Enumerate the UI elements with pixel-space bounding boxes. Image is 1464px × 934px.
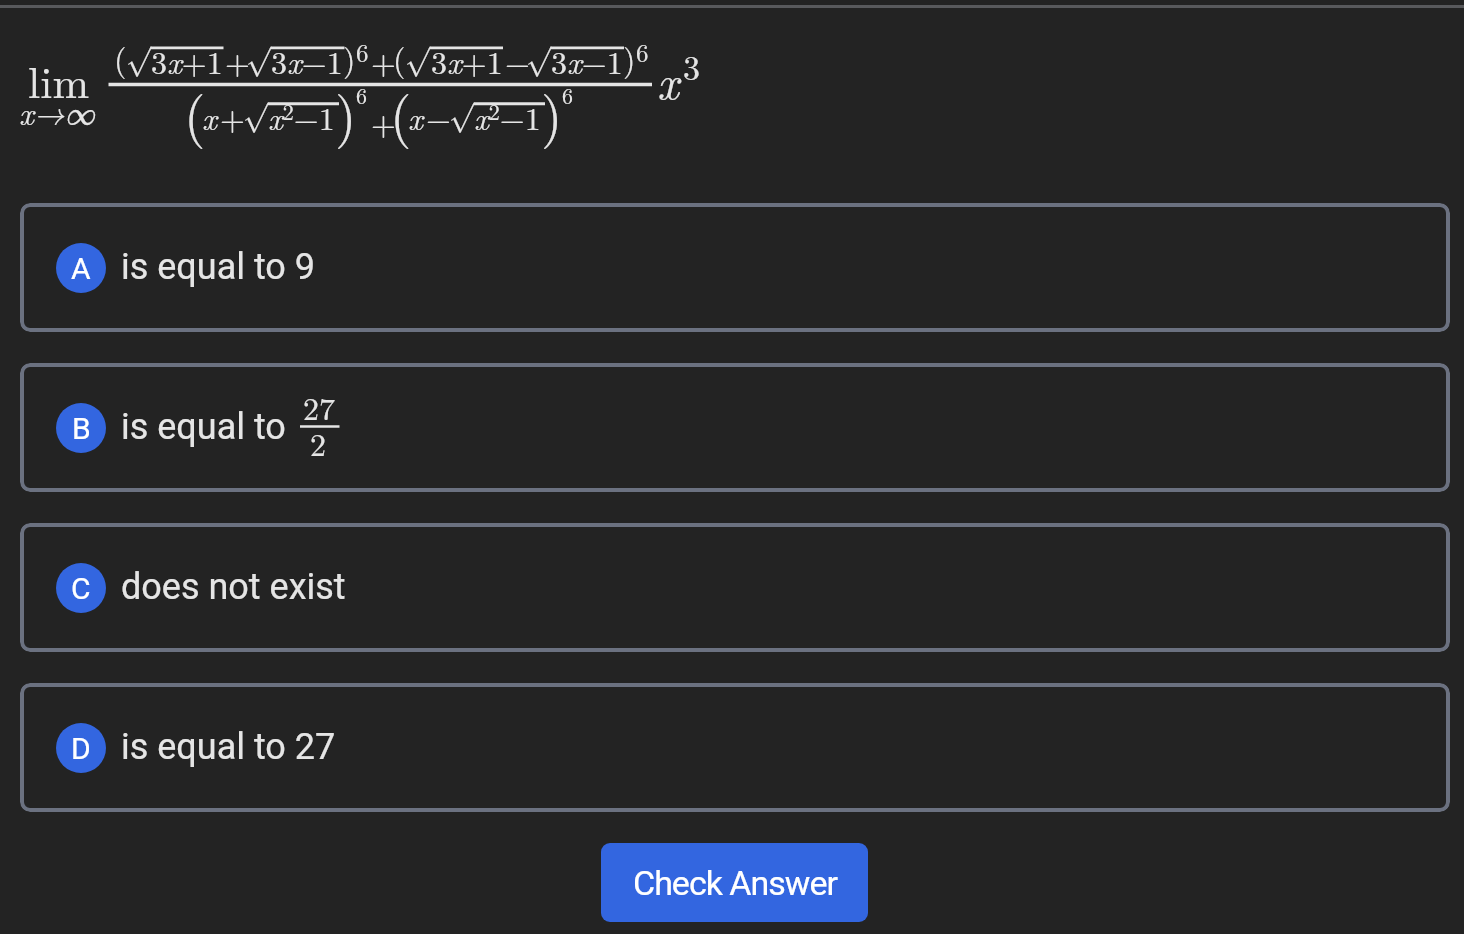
staticText: √ bbox=[243, 80, 268, 110]
staticText: ( bbox=[393, 35, 406, 80]
staticText: ) bbox=[343, 35, 356, 80]
staticText: B bbox=[72, 411, 91, 446]
staticText: D bbox=[71, 731, 91, 766]
staticText: √ bbox=[126, 24, 151, 54]
staticText: 2 bbox=[310, 420, 327, 465]
staticText: x2−1 bbox=[474, 94, 541, 139]
staticText: is equal to bbox=[121, 406, 286, 448]
button[interactable]: Check Answer bbox=[601, 843, 868, 922]
staticText: x bbox=[408, 94, 423, 139]
staticText: 27 bbox=[303, 384, 336, 429]
staticText: x→∞ bbox=[19, 89, 95, 134]
button[interactable]: Option B: is equal to 27 over 2 bbox=[20, 363, 1450, 492]
button[interactable]: Option A: is equal to 9 bbox=[20, 203, 1450, 332]
staticText: √ bbox=[449, 80, 474, 110]
staticText: 3x−1 bbox=[551, 38, 623, 83]
staticText: − bbox=[426, 94, 451, 139]
staticText: 6 bbox=[562, 79, 574, 110]
staticText: √ bbox=[405, 24, 430, 54]
staticText: ) bbox=[623, 35, 636, 80]
staticText: − bbox=[505, 38, 530, 83]
staticText: + bbox=[371, 99, 396, 144]
staticText: √ bbox=[526, 24, 551, 54]
staticText: ) bbox=[541, 73, 563, 151]
staticText: 6 bbox=[356, 34, 369, 69]
staticText: A bbox=[71, 251, 91, 286]
staticText: is equal to 27 bbox=[121, 726, 336, 768]
staticText: √ bbox=[246, 24, 271, 54]
staticText: ( bbox=[390, 73, 412, 151]
staticText: lim bbox=[28, 48, 90, 110]
staticText: ( bbox=[114, 35, 127, 80]
staticText: 3 bbox=[683, 42, 700, 90]
button[interactable]: Option C: does not exist bbox=[20, 523, 1450, 652]
staticText: x2−1 bbox=[268, 94, 335, 139]
staticText: Check Answer bbox=[633, 863, 837, 903]
staticText: x bbox=[202, 94, 217, 139]
staticText: 3x+1 bbox=[431, 38, 503, 83]
staticText: is equal to 9 bbox=[121, 246, 316, 288]
staticText: ) bbox=[335, 73, 357, 151]
staticText: x bbox=[657, 46, 679, 113]
staticText: ( bbox=[184, 73, 206, 151]
staticText: 6 bbox=[636, 34, 649, 69]
staticText: C bbox=[71, 571, 91, 606]
staticText: 6 bbox=[356, 79, 368, 110]
button[interactable]: Option D: is equal to 27 bbox=[20, 683, 1450, 812]
staticText: does not exist bbox=[121, 566, 346, 608]
staticText: 3x+1 bbox=[151, 38, 223, 83]
staticText: + bbox=[371, 38, 396, 83]
staticText: + bbox=[220, 94, 245, 139]
staticText: 3x−1 bbox=[271, 38, 343, 83]
staticText: + bbox=[225, 38, 250, 83]
